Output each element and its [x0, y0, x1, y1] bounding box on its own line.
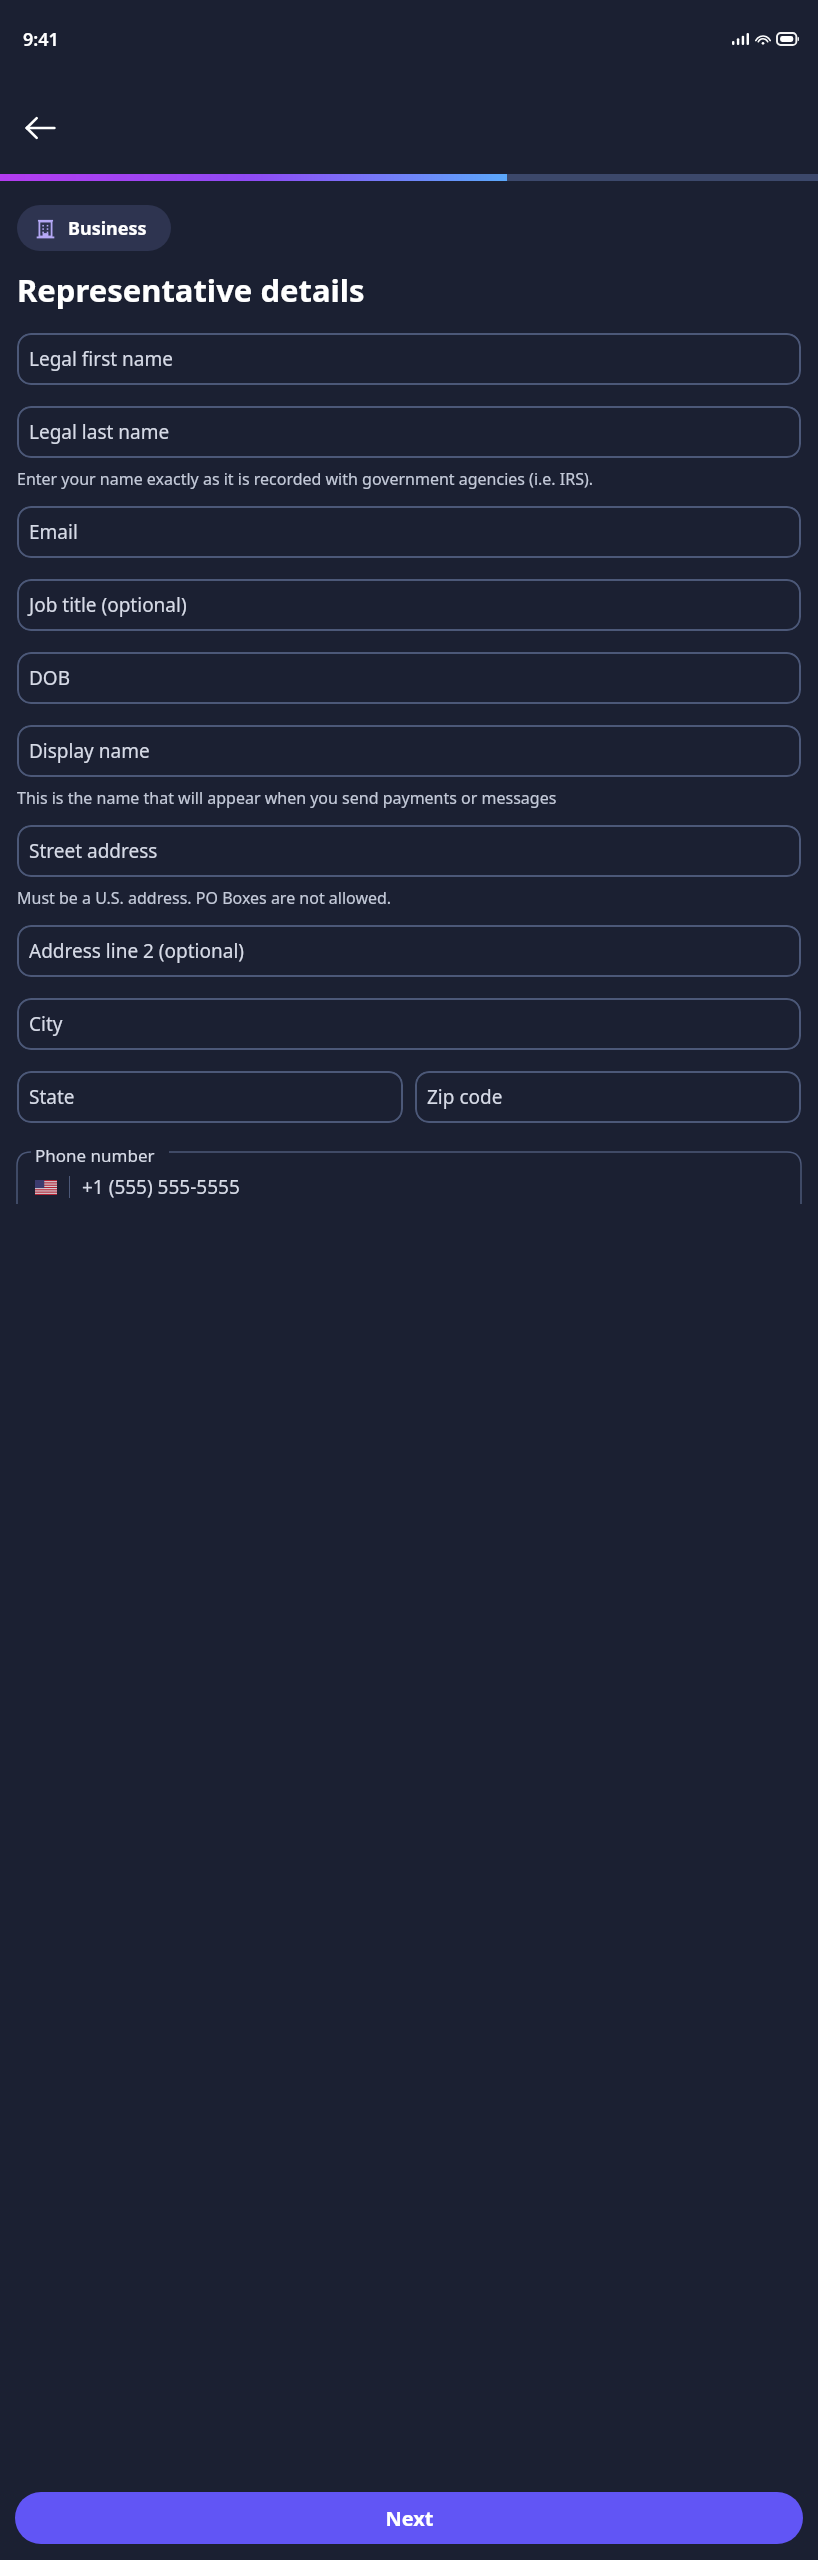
button[interactable]: City	[17, 998, 801, 1050]
staticText: Display name	[29, 738, 150, 764]
staticText: This is the name that will appear when y…	[17, 787, 801, 809]
staticText: Zip code	[427, 1084, 503, 1110]
staticText: Phone number	[35, 1144, 155, 1167]
staticText: Representative details	[17, 269, 365, 311]
staticText: +1 (555) 555-5555	[82, 1174, 240, 1200]
staticText: City	[29, 1011, 63, 1037]
staticText: Job title (optional)	[29, 592, 187, 618]
staticText: Address line 2 (optional)	[29, 938, 244, 964]
button[interactable]: Business	[17, 205, 171, 251]
button[interactable]: State	[17, 1071, 403, 1123]
button[interactable]: Legal last name	[17, 406, 801, 458]
staticText: State	[29, 1084, 75, 1110]
button[interactable]: Back	[12, 100, 68, 156]
button[interactable]: Street address	[17, 825, 801, 877]
staticText: Legal first name	[29, 346, 173, 372]
button[interactable]: Legal first name	[17, 333, 801, 385]
button[interactable]: Address line 2 (optional)	[17, 925, 801, 977]
staticText: Business	[68, 216, 147, 241]
staticText: 9:41	[23, 27, 59, 52]
button[interactable]: DOB	[17, 652, 801, 704]
button[interactable]: Display name	[17, 725, 801, 777]
staticText: Legal last name	[29, 419, 170, 445]
staticText: Next	[385, 2505, 434, 2532]
button[interactable]: Job title (optional)	[17, 579, 801, 631]
button[interactable]: Next	[15, 2492, 803, 2544]
staticText: DOB	[29, 665, 71, 691]
staticText: Email	[29, 519, 78, 545]
button[interactable]: Zip code	[415, 1071, 801, 1123]
staticText: Street address	[29, 838, 158, 864]
staticText: Must be a U.S. address. PO Boxes are not…	[17, 887, 801, 909]
button[interactable]: Email	[17, 506, 801, 558]
staticText: Enter your name exactly as it is recorde…	[17, 468, 801, 490]
